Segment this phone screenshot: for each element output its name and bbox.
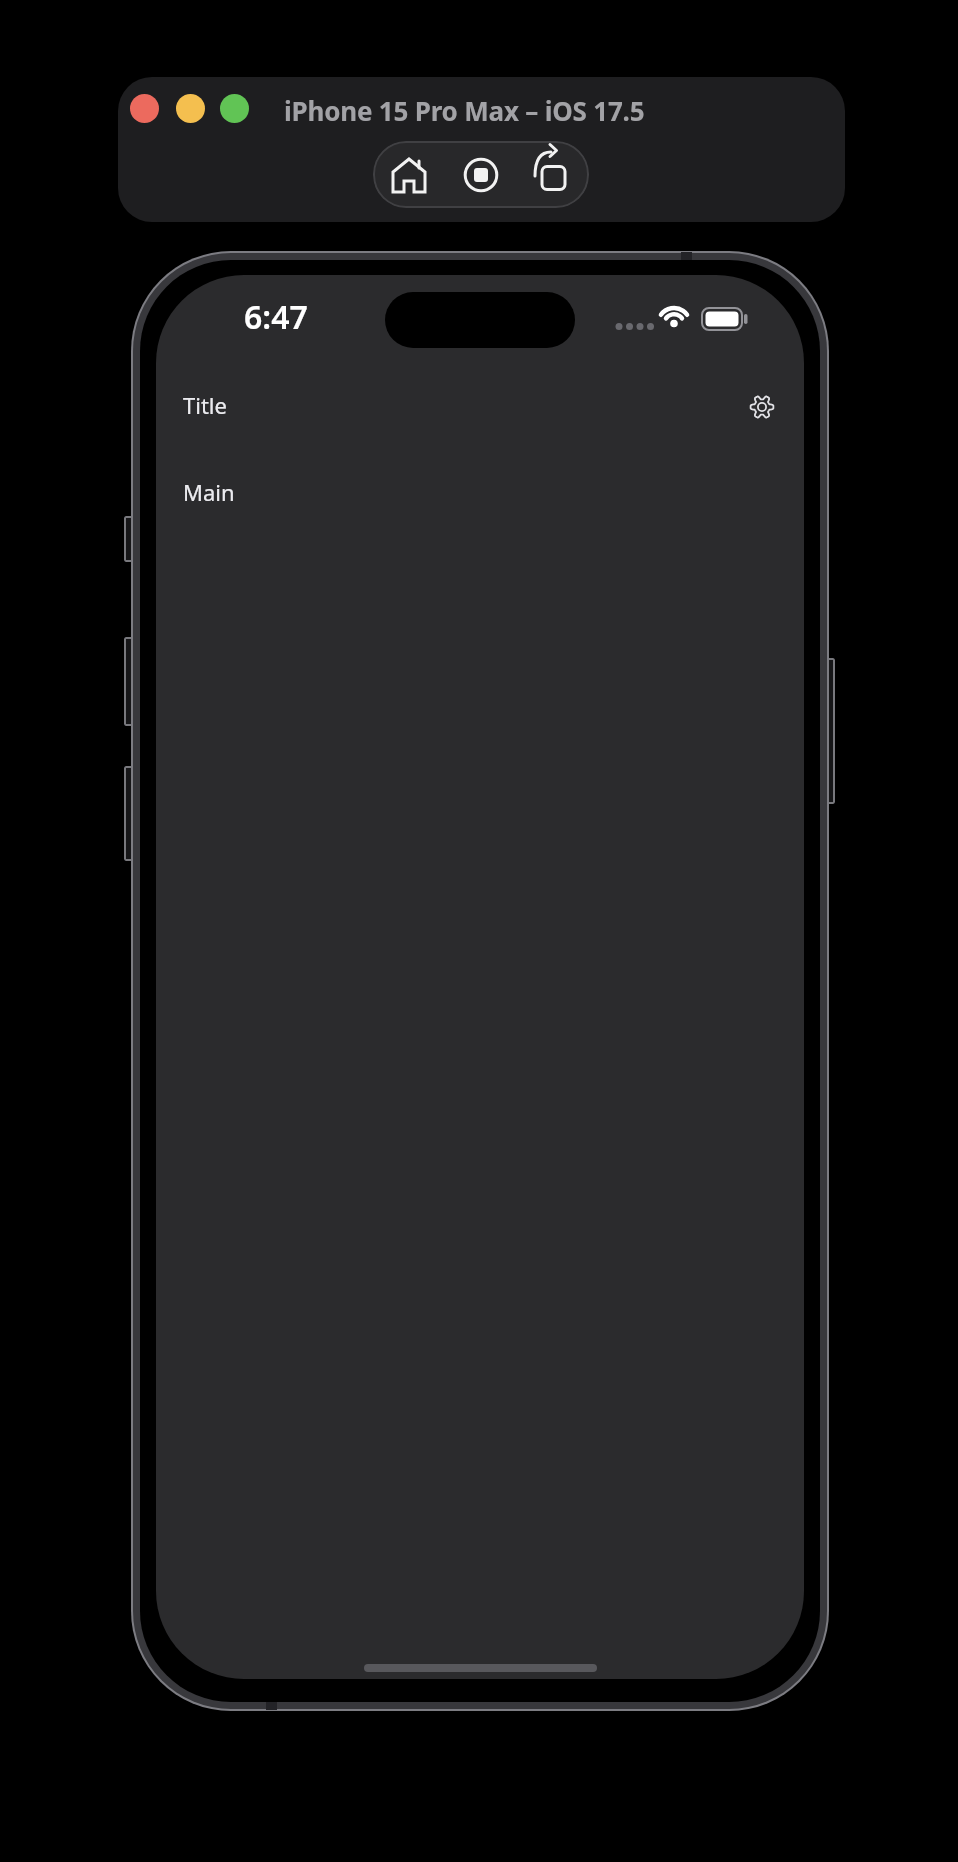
staticText: iPhone 15 Pro Max – iOS 17.5 (284, 93, 645, 127)
button[interactable] (746, 391, 778, 423)
staticText: 6:47 (244, 295, 308, 339)
staticText: Main (183, 477, 235, 507)
button[interactable] (220, 94, 249, 123)
button[interactable] (176, 94, 205, 123)
button[interactable] (130, 94, 159, 123)
button[interactable] (517, 141, 589, 208)
button[interactable] (373, 141, 445, 208)
button[interactable] (445, 141, 517, 208)
staticText: Title (183, 390, 227, 420)
